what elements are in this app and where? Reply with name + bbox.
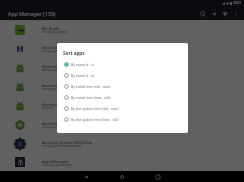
button[interactable]: Android Auto xyxy=(0,39,244,58)
button[interactable]: Android Shared Library xyxy=(0,77,244,96)
button[interactable]: App Manager xyxy=(0,153,244,171)
staticText: Android System WebView xyxy=(42,140,92,146)
staticText: com.google.android.as xyxy=(42,125,74,129)
button[interactable]: By last update time (old - new) xyxy=(57,103,188,114)
staticText: com.google.android.projection.gearhead xyxy=(42,49,98,53)
button[interactable]: Air Bank xyxy=(0,20,244,39)
staticText: Android Auto xyxy=(42,45,69,51)
button[interactable]: Share xyxy=(208,9,219,18)
button[interactable]: Android Services Library xyxy=(0,58,244,77)
staticText: Android Services Library xyxy=(42,64,90,70)
staticText: By install time (old - new) xyxy=(71,84,111,89)
staticText: Air Bank xyxy=(42,26,59,32)
button[interactable]: Recents xyxy=(140,171,176,182)
button[interactable]: Home xyxy=(104,171,140,182)
staticText: Android System Intelligence xyxy=(42,121,98,127)
staticText: By last update time (old - new) xyxy=(71,106,119,111)
staticText: App Manager xyxy=(42,159,69,165)
staticText: Sort apps xyxy=(63,50,85,56)
staticText: com.google.android.webview xyxy=(42,144,82,148)
button[interactable]: More options xyxy=(230,9,241,18)
staticText: Android System xyxy=(42,102,73,108)
staticText: App Manager (133) xyxy=(8,10,56,17)
staticText: By name (z - a) xyxy=(71,73,94,78)
button[interactable]: By name (z - a) xyxy=(57,70,188,81)
staticText: com.google.android.ext.services xyxy=(42,68,86,72)
staticText: com.google.android.maps xyxy=(42,87,78,91)
button[interactable]: Back xyxy=(68,171,104,182)
staticText: android xyxy=(42,106,53,110)
staticText: cz.maing.appmanager xyxy=(42,163,73,167)
staticText: 20:01 xyxy=(233,1,242,5)
button[interactable]: Filter xyxy=(219,9,230,18)
button[interactable]: Android System Intelligence xyxy=(0,115,244,134)
button[interactable]: Search xyxy=(197,9,208,18)
staticText: Android Shared Library xyxy=(42,83,88,89)
staticText: By install time (new - old) xyxy=(71,95,111,100)
button[interactable]: Android System WebView xyxy=(0,134,244,153)
staticText: By name (a - z) xyxy=(71,62,94,67)
button[interactable]: By install time (new - old) xyxy=(57,92,188,103)
button[interactable]: By last update time (new - old) xyxy=(57,114,188,125)
button[interactable]: By install time (old - new) xyxy=(57,81,188,92)
button[interactable]: By name (a - z) xyxy=(57,59,188,70)
staticText: cz.airbank.android xyxy=(42,30,68,34)
button[interactable]: Android System xyxy=(0,96,244,115)
staticText: By last update time (new - old) xyxy=(71,117,119,122)
